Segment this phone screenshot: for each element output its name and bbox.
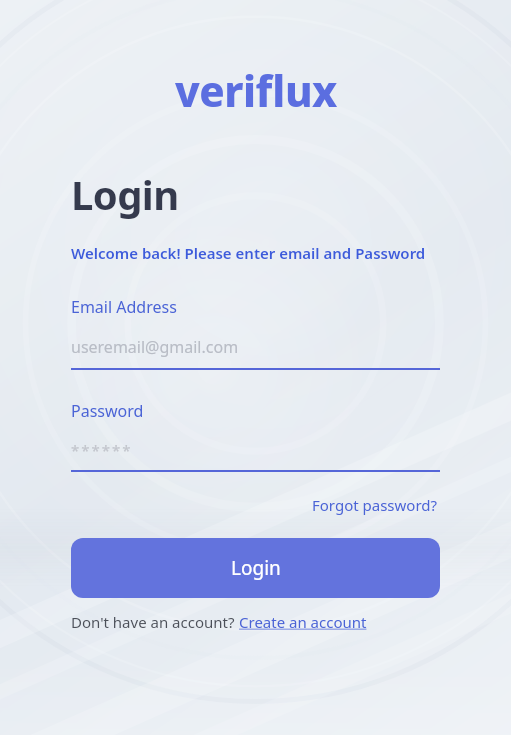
staticText: veriflux — [175, 62, 337, 119]
button[interactable]: Password — [71, 400, 440, 472]
staticText: Email Address — [71, 296, 177, 318]
staticText: Password — [71, 400, 144, 422]
staticText: Login — [71, 167, 179, 221]
staticText: useremail@gmail.com — [71, 336, 239, 358]
staticText: Welcome back! Please enter email and Pas… — [71, 243, 426, 263]
button[interactable]: Login — [71, 538, 440, 598]
button[interactable]: Create an account — [239, 612, 367, 632]
staticText: Forgot password? — [312, 495, 438, 515]
staticText: Create an account — [239, 612, 367, 632]
staticText: Don't have an account? — [71, 612, 239, 632]
button[interactable]: Forgot password? — [310, 492, 440, 518]
staticText: Login — [231, 555, 281, 581]
staticText: ****** — [71, 440, 133, 460]
button[interactable]: Email Address — [71, 296, 440, 370]
